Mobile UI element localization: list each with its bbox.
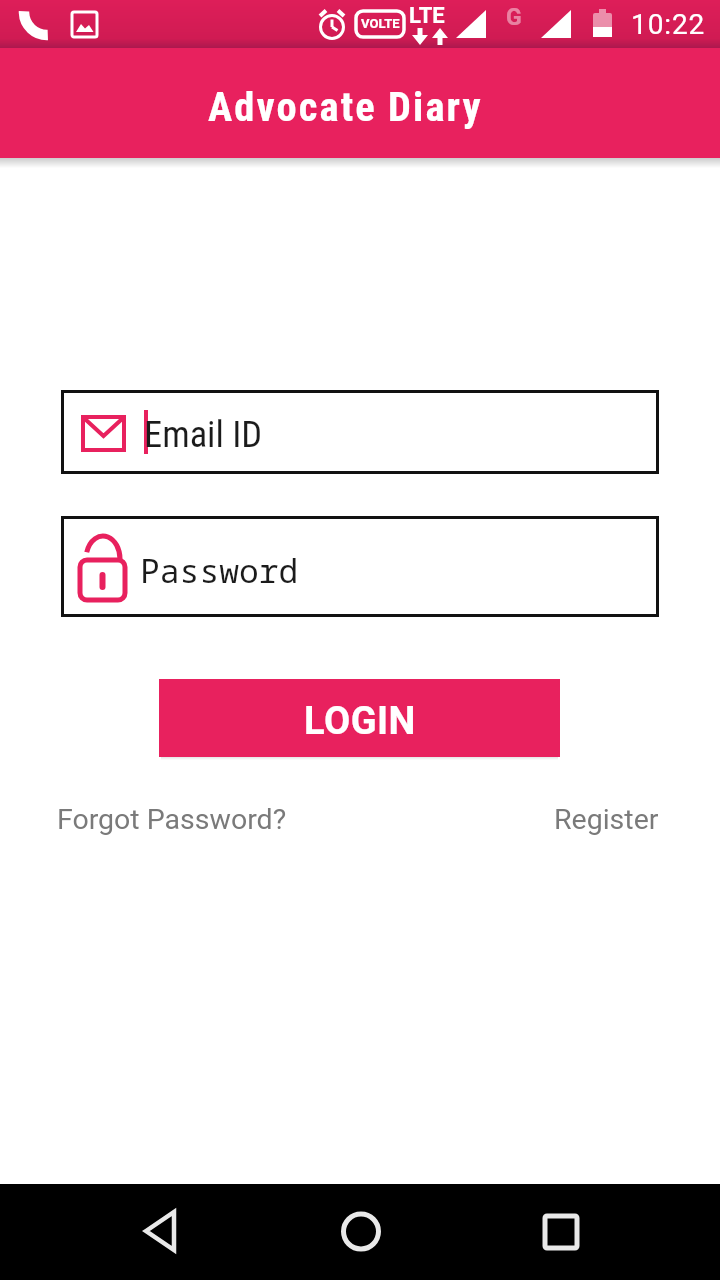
staticText: Register <box>554 803 659 836</box>
staticText: Forgot Password? <box>57 803 287 836</box>
staticText: 10:22 <box>631 8 706 41</box>
button[interactable] <box>321 1192 401 1272</box>
staticText: Advocate Diary <box>208 83 483 130</box>
button[interactable] <box>120 1192 200 1272</box>
staticText: G <box>506 4 522 31</box>
button[interactable]: Email ID <box>61 390 659 474</box>
staticText: LTE <box>409 3 445 29</box>
button[interactable]: LOGIN <box>159 679 560 757</box>
staticText: LOGIN <box>304 699 416 744</box>
button[interactable] <box>521 1192 601 1272</box>
staticText: Email ID <box>144 413 263 456</box>
staticText: Password <box>140 548 299 593</box>
button[interactable]: Forgot Password? <box>57 803 287 836</box>
button[interactable]: Password <box>61 516 659 617</box>
button[interactable]: Register <box>554 803 659 836</box>
staticText: VOLTE <box>361 16 400 31</box>
